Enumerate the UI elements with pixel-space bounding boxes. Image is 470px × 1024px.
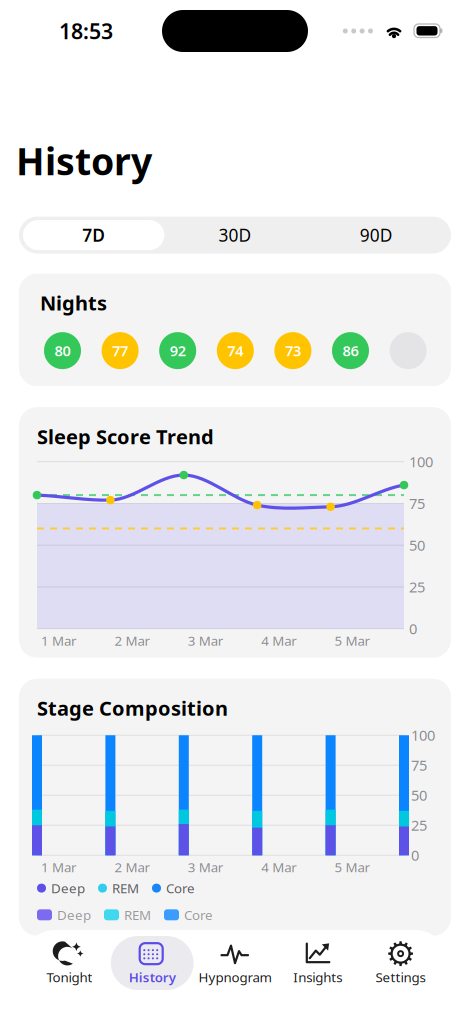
staticText: Deep bbox=[51, 879, 85, 897]
button[interactable]: 7D bbox=[23, 220, 164, 250]
staticText: 100 bbox=[409, 452, 433, 471]
staticText: 7D bbox=[82, 224, 105, 247]
staticText: 2 Mar bbox=[114, 632, 150, 649]
staticText: 75 bbox=[411, 755, 427, 775]
staticText: 3 Mar bbox=[188, 632, 224, 649]
button[interactable]: 90D bbox=[306, 220, 447, 250]
staticText: 4 Mar bbox=[261, 632, 297, 649]
staticText: 50 bbox=[411, 785, 427, 805]
staticText: Tonight bbox=[46, 968, 92, 986]
staticText: 75 bbox=[409, 493, 425, 513]
staticText: 18:53 bbox=[59, 17, 113, 45]
staticText: Sleep Score Trend bbox=[37, 423, 214, 450]
staticText: History bbox=[129, 968, 176, 986]
staticText: 50 bbox=[409, 535, 425, 555]
staticText: 80 bbox=[54, 341, 70, 360]
button[interactable]: Insights bbox=[276, 936, 359, 990]
staticText: History bbox=[16, 136, 152, 186]
staticText: 25 bbox=[409, 577, 425, 596]
staticText: 90D bbox=[360, 224, 393, 247]
staticText: 0 bbox=[409, 619, 417, 638]
staticText: 1 Mar bbox=[41, 858, 77, 876]
staticText: Deep bbox=[57, 906, 91, 924]
button[interactable]: Tonight bbox=[28, 936, 111, 990]
staticText: REM bbox=[112, 879, 139, 897]
staticText: 5 Mar bbox=[335, 858, 371, 876]
staticText: Settings bbox=[376, 968, 426, 986]
button[interactable]: History bbox=[111, 936, 194, 990]
button[interactable]: Hypnogram bbox=[194, 936, 276, 990]
staticText: 2 Mar bbox=[114, 858, 150, 876]
staticText: 1 Mar bbox=[41, 632, 77, 649]
staticText: Nights bbox=[40, 290, 107, 316]
staticText: 92 bbox=[170, 341, 186, 360]
staticText: 73 bbox=[285, 341, 301, 360]
button[interactable]: 30D bbox=[164, 220, 306, 250]
staticText: 3 Mar bbox=[188, 858, 224, 876]
staticText: Hypnogram bbox=[198, 968, 271, 986]
staticText: 25 bbox=[411, 815, 427, 835]
staticText: Core bbox=[166, 879, 195, 897]
staticText: 100 bbox=[411, 725, 435, 745]
staticText: 74 bbox=[227, 341, 243, 360]
staticText: 77 bbox=[112, 341, 128, 360]
staticText: 30D bbox=[218, 224, 251, 247]
staticText: REM bbox=[124, 906, 151, 924]
button[interactable]: Settings bbox=[359, 936, 442, 990]
staticText: Core bbox=[184, 906, 213, 924]
staticText: 86 bbox=[342, 341, 358, 360]
staticText: 5 Mar bbox=[335, 632, 371, 649]
staticText: Stage Composition bbox=[37, 695, 228, 721]
staticText: Insights bbox=[293, 968, 342, 986]
staticText: 0 bbox=[411, 845, 419, 865]
staticText: 4 Mar bbox=[261, 858, 297, 876]
